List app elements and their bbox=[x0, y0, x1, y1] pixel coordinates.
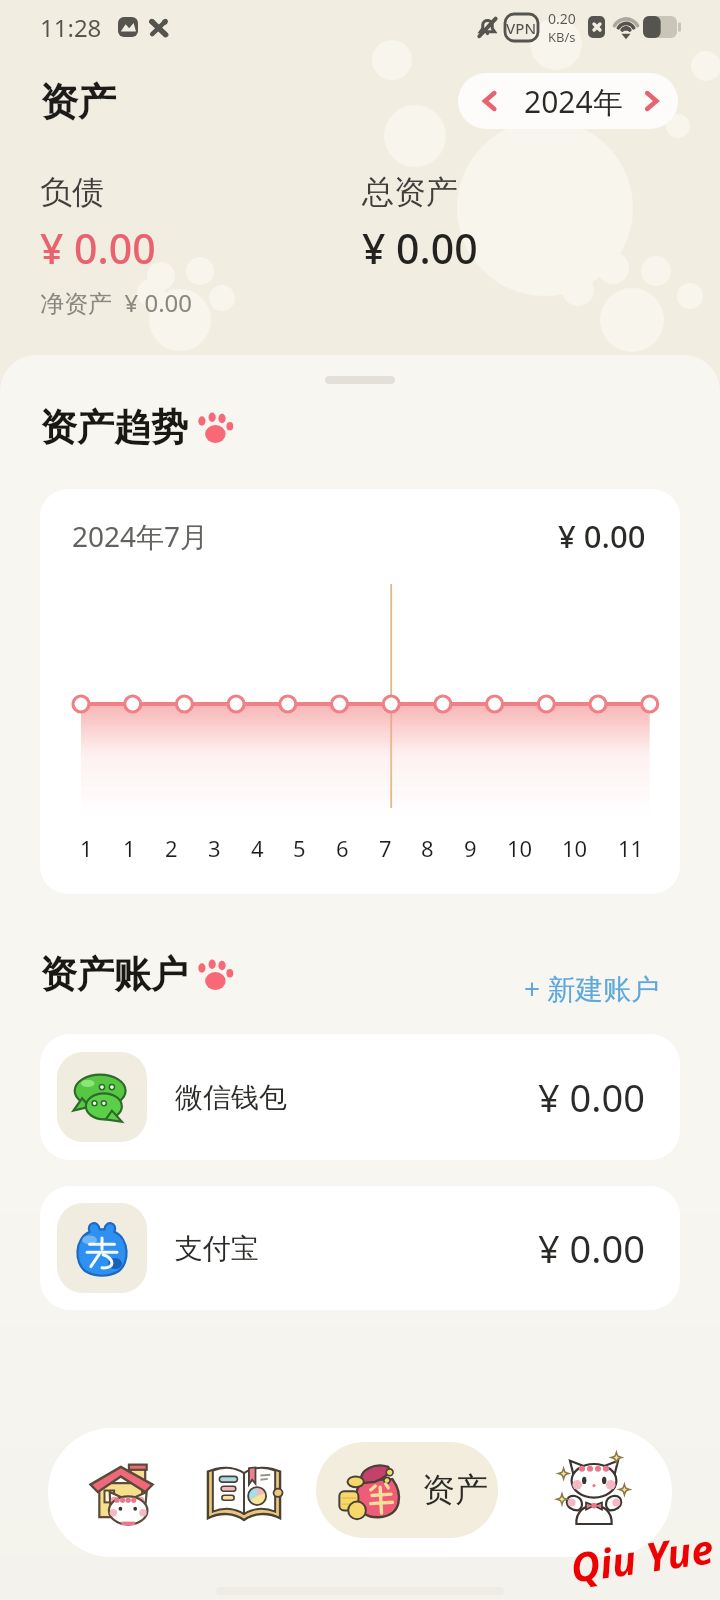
button[interactable]: 2024年 bbox=[520, 73, 626, 129]
staticText: 资产账户 bbox=[40, 951, 188, 998]
staticText: 2024年 bbox=[524, 81, 623, 122]
staticText: 资产趋势 bbox=[40, 404, 188, 451]
staticText: 3 bbox=[208, 833, 221, 863]
staticText: 1 bbox=[80, 833, 93, 863]
staticText: ¥ 0.00 bbox=[362, 220, 478, 276]
staticText: VPN bbox=[506, 18, 537, 38]
button[interactable]: 微信钱包 bbox=[40, 1034, 680, 1160]
staticText: 资产 bbox=[422, 1469, 488, 1511]
button[interactable]: Home bbox=[75, 1444, 171, 1540]
staticText: 4 bbox=[251, 833, 264, 863]
staticText: 负债 bbox=[40, 172, 104, 212]
staticText: 11:28 bbox=[40, 11, 102, 44]
staticText: 总资产 bbox=[362, 172, 458, 212]
button[interactable]: Next year bbox=[626, 73, 678, 129]
button[interactable]: Ledger bbox=[196, 1444, 292, 1540]
staticText: 2 bbox=[165, 833, 178, 863]
staticText: 0.20 bbox=[548, 9, 576, 28]
button[interactable]: Profile bbox=[546, 1440, 642, 1536]
staticText: KB/s bbox=[548, 28, 576, 46]
button[interactable]: + 新建账户 bbox=[518, 963, 666, 1013]
staticText: 净资产 ¥ 0.00 bbox=[40, 286, 193, 319]
staticText: 8 bbox=[421, 833, 434, 863]
staticText: ¥ 0.00 bbox=[538, 1222, 646, 1274]
staticText: Qiu Yue bbox=[567, 1520, 717, 1594]
staticText: 7 bbox=[379, 833, 392, 863]
staticText: 10 bbox=[507, 833, 533, 863]
button[interactable]: Previous year bbox=[458, 73, 520, 129]
staticText: 11 bbox=[618, 833, 644, 863]
staticText: ¥ 0.00 bbox=[558, 515, 646, 557]
staticText: 6 bbox=[336, 833, 349, 863]
staticText: 2024年7月 bbox=[72, 517, 209, 555]
staticText: 资产 bbox=[40, 78, 116, 126]
staticText: + 新建账户 bbox=[524, 969, 660, 1007]
staticText: 5 bbox=[293, 833, 306, 863]
button[interactable]: 资产 bbox=[316, 1442, 498, 1538]
staticText: 支付宝 bbox=[175, 1231, 259, 1266]
staticText: ¥ 0.00 bbox=[40, 220, 156, 276]
button[interactable]: 支付宝 bbox=[40, 1186, 680, 1310]
staticText: 10 bbox=[562, 833, 588, 863]
staticText: 9 bbox=[464, 833, 477, 863]
staticText: 1 bbox=[123, 833, 136, 863]
staticText: ¥ 0.00 bbox=[538, 1071, 646, 1123]
staticText: 微信钱包 bbox=[175, 1080, 287, 1115]
